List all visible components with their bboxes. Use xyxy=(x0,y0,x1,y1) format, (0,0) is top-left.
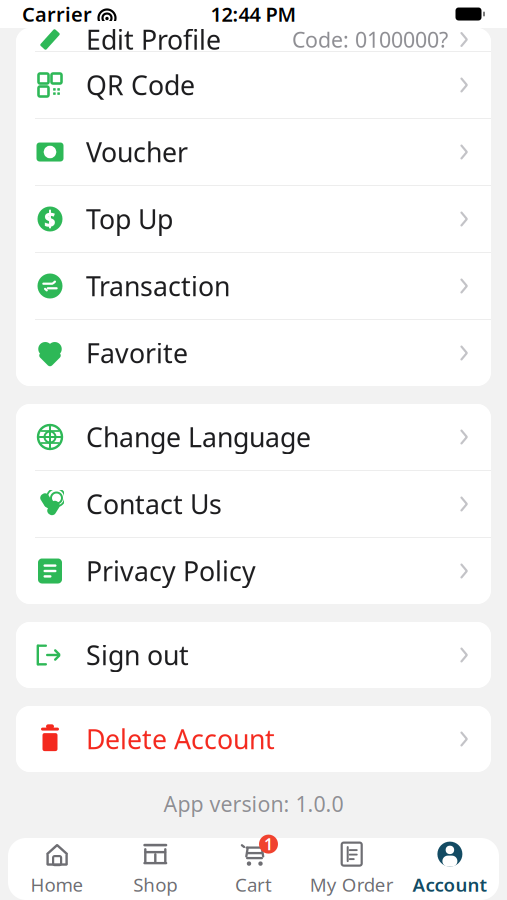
button[interactable]: Privacy Policy xyxy=(16,538,491,604)
button[interactable]: My Order xyxy=(303,840,401,898)
staticText: QR Code xyxy=(86,67,195,103)
staticText: Cart xyxy=(235,872,272,897)
button[interactable]: Change Language xyxy=(16,404,491,470)
staticText: Delete Account xyxy=(86,721,275,757)
staticText: Change Language xyxy=(86,419,311,455)
staticText: Contact Us xyxy=(86,486,222,522)
button[interactable]: Contact Us xyxy=(16,471,491,537)
button[interactable]: Transaction xyxy=(16,253,491,319)
staticText: Favorite xyxy=(86,335,188,371)
button[interactable]: 1 xyxy=(204,840,303,898)
staticText: 12:44 PM xyxy=(210,1,296,27)
staticText: Home xyxy=(31,872,84,897)
button[interactable]: QR Code xyxy=(16,52,491,118)
staticText: Account xyxy=(412,872,487,897)
button[interactable]: Voucher xyxy=(16,119,491,185)
button[interactable]: Shop xyxy=(106,840,204,898)
staticText: Transaction xyxy=(86,268,230,304)
button[interactable]: Account xyxy=(401,840,499,898)
staticText: Privacy Policy xyxy=(86,553,256,589)
button[interactable]: Edit Profile xyxy=(16,28,491,51)
staticText: Code: 0100000? xyxy=(292,25,448,54)
button[interactable]: Favorite xyxy=(16,320,491,386)
staticText: App version: 1.0.0 xyxy=(163,790,343,818)
staticText: Edit Profile xyxy=(86,22,221,57)
staticText: 1 xyxy=(264,833,273,855)
staticText: S xyxy=(44,206,56,232)
staticText: Carrier xyxy=(22,1,92,27)
staticText: Shop xyxy=(133,872,177,897)
button[interactable]: Sign out xyxy=(16,622,491,688)
button[interactable]: Home xyxy=(8,840,106,898)
staticText: Voucher xyxy=(86,134,188,170)
staticText: My Order xyxy=(310,872,394,897)
button[interactable]: S xyxy=(16,186,491,252)
staticText: Top Up xyxy=(86,201,173,237)
button[interactable]: Delete Account xyxy=(16,706,491,772)
staticText: Sign out xyxy=(86,637,189,673)
